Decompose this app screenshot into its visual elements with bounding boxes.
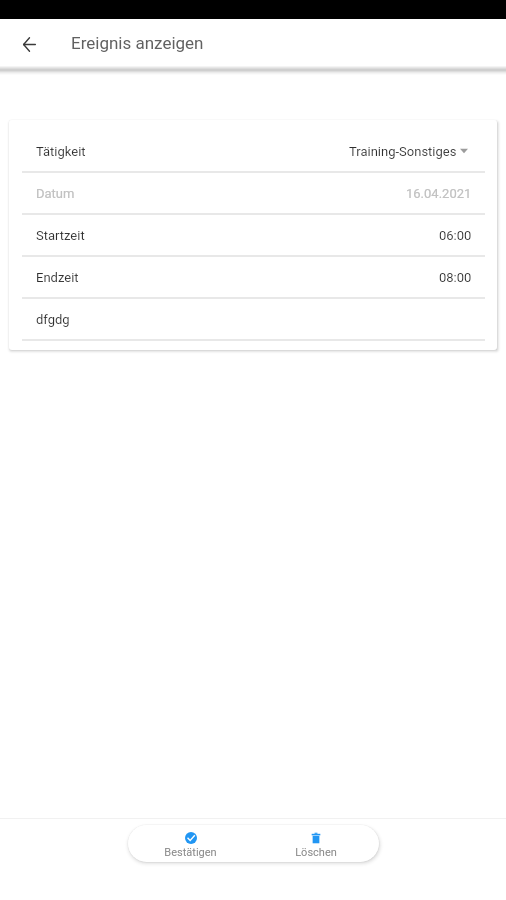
button[interactable]: Tätigkeit: [9, 131, 497, 173]
staticText: Tätigkeit: [36, 144, 86, 159]
button[interactable]: Bestätigen: [128, 825, 253, 862]
staticText: Datum: [36, 186, 75, 201]
staticText: Startzeit: [36, 228, 85, 243]
staticText: Endzeit: [36, 270, 79, 285]
staticText: 08:00: [439, 270, 472, 285]
staticText: Löschen: [295, 846, 337, 859]
button[interactable]: Endzeit: [9, 257, 497, 299]
staticText: dfgdg: [36, 312, 70, 327]
button[interactable]: Back: [13, 28, 45, 60]
button[interactable]: dfgdg: [9, 299, 497, 341]
staticText: 16.04.2021: [406, 186, 472, 201]
staticText: Bestätigen: [164, 846, 217, 859]
staticText: Ereignis anzeigen: [71, 33, 204, 53]
button[interactable]: Startzeit: [9, 215, 497, 257]
staticText: Training-Sonstiges: [349, 144, 457, 159]
staticText: 06:00: [439, 228, 472, 243]
button[interactable]: Löschen: [253, 825, 379, 862]
button[interactable]: Datum: [9, 173, 497, 215]
